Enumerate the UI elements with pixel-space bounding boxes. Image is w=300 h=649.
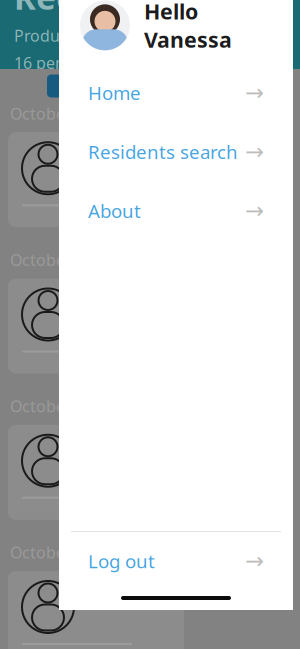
staticText: Hello Vanessa (144, 0, 232, 54)
staticText: Log out (88, 549, 155, 573)
button[interactable]: Home (59, 80, 293, 106)
staticText: Home (88, 80, 141, 105)
staticText: Requests (14, 0, 167, 19)
button[interactable]: Log out (59, 548, 293, 574)
staticText: About (88, 198, 141, 223)
staticText: → (245, 80, 264, 105)
staticText: October 16 (10, 542, 94, 563)
staticText: → (245, 139, 264, 164)
staticText: October 15 (10, 395, 94, 417)
button[interactable]: About (59, 198, 293, 224)
staticText: → (245, 548, 264, 574)
staticText: October 12 (10, 103, 94, 124)
staticText: → (245, 198, 264, 223)
staticText: October 14 (10, 249, 94, 270)
staticText: Production (14, 25, 98, 46)
button[interactable]: Residents search (59, 139, 293, 165)
staticText: 16 pending (14, 52, 99, 73)
staticText: Residents search (88, 139, 238, 164)
